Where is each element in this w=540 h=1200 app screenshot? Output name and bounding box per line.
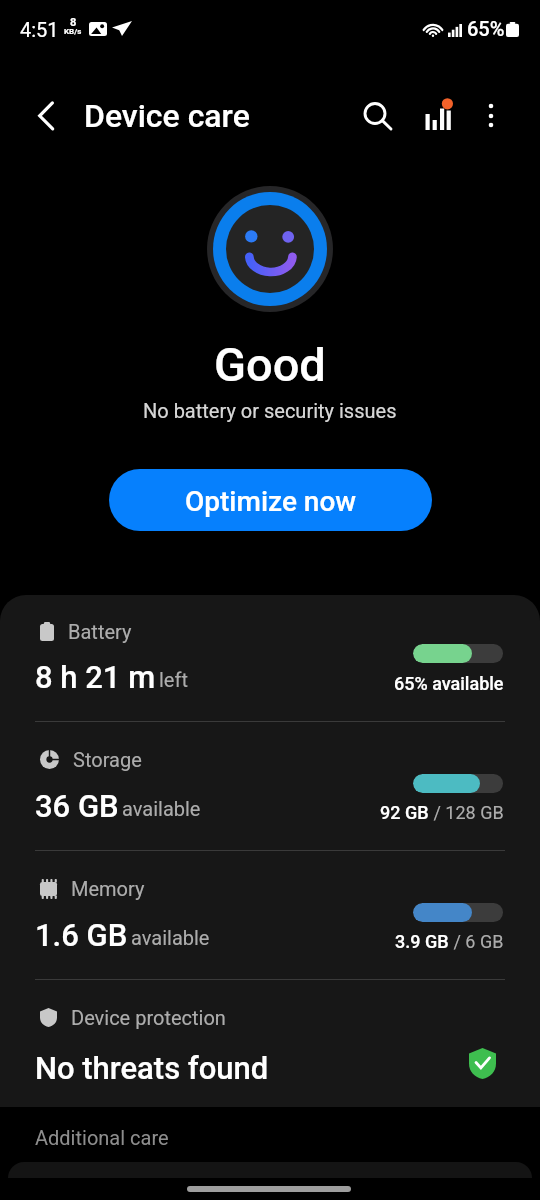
button[interactable]: Usage statistics <box>417 89 465 137</box>
staticText: Good <box>214 337 326 392</box>
staticText: 4:51 <box>20 18 59 41</box>
staticText: Additional care <box>35 1126 169 1149</box>
staticText: Memory <box>71 877 145 900</box>
button[interactable]: Back <box>22 85 68 131</box>
staticText: 8 <box>70 16 77 29</box>
staticText: 3.9 GB <box>395 931 449 952</box>
button[interactable]: More options <box>467 89 515 137</box>
staticText: KB/s <box>64 27 82 36</box>
staticText: / 6 GB <box>449 931 504 952</box>
staticText: 92 GB <box>380 802 429 823</box>
button[interactable]: Search <box>351 89 399 137</box>
staticText: Battery <box>68 620 132 643</box>
staticText: Storage <box>73 748 142 771</box>
button[interactable]: Battery <box>0 595 540 721</box>
button[interactable]: Storage <box>0 721 540 850</box>
staticText: 65% <box>467 17 505 40</box>
staticText: left <box>159 668 188 691</box>
staticText: 36 GB <box>35 788 119 824</box>
staticText: Device protection <box>71 1006 226 1029</box>
button[interactable]: Memory <box>0 850 540 979</box>
staticText: No battery or security issues <box>143 399 397 422</box>
staticText: Device care <box>84 97 250 135</box>
button[interactable]: Optimize now <box>109 469 432 531</box>
staticText: available <box>131 926 210 949</box>
staticText: No threats found <box>35 1050 269 1086</box>
staticText: 8 h 21 m <box>35 659 156 695</box>
staticText: Optimize now <box>185 485 357 518</box>
staticText: 1.6 GB <box>35 917 128 953</box>
staticText: available <box>122 797 201 820</box>
staticText: 65% available <box>394 673 504 694</box>
button[interactable]: Device protection <box>0 979 540 1107</box>
staticText: / 128 GB <box>429 802 504 823</box>
